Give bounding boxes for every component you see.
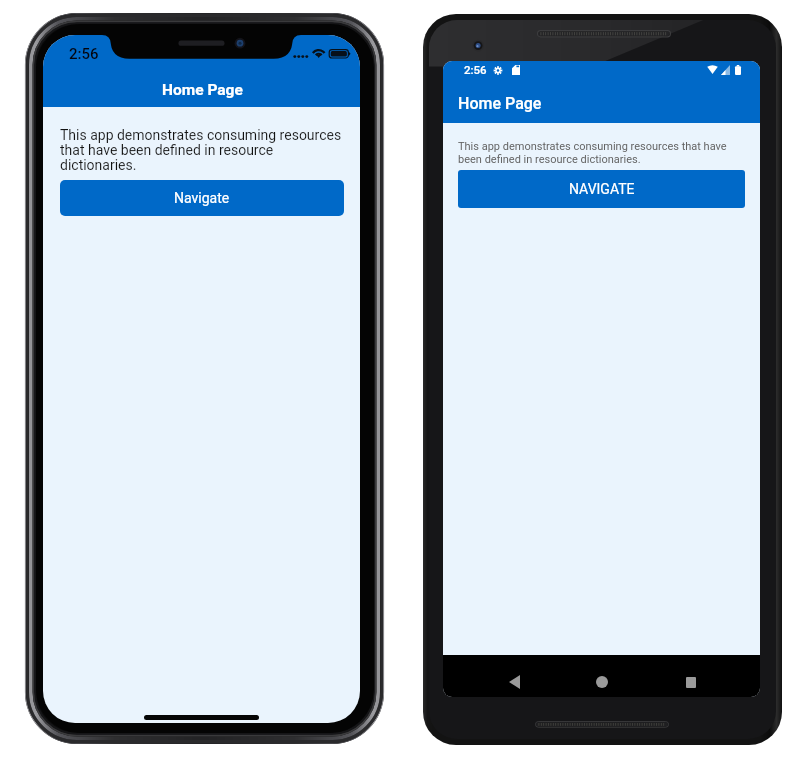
button[interactable]: Navigate — [60, 180, 344, 216]
staticText: This app demonstrates consuming resource… — [60, 127, 344, 174]
staticText: 2:56 — [464, 63, 487, 76]
staticText: This app demonstrates consuming resource… — [458, 140, 745, 165]
staticText: Navigate — [174, 190, 230, 206]
staticText: Home Page — [162, 81, 243, 99]
button[interactable]: Recent apps — [675, 666, 707, 697]
button[interactable]: NAVIGATE — [458, 170, 745, 208]
staticText: 2:56 — [69, 45, 99, 63]
button[interactable]: Back — [498, 666, 530, 697]
staticText: Home Page — [458, 94, 542, 113]
staticText: NAVIGATE — [569, 181, 635, 197]
button[interactable]: Home — [586, 666, 618, 697]
